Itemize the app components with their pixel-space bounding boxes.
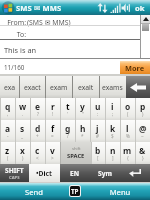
staticText: x [20, 145, 25, 156]
button[interactable]: e [30, 98, 45, 120]
button[interactable]: EN [60, 164, 89, 182]
staticText: ( [7, 155, 9, 161]
button[interactable]: a [0, 120, 15, 142]
staticText: c [35, 145, 40, 156]
button[interactable]: exa [0, 76, 19, 98]
staticText: shift [72, 146, 81, 152]
staticText: + [36, 133, 39, 139]
button[interactable]: shift [60, 142, 91, 164]
staticText: * [81, 133, 84, 139]
staticText: SPACE [67, 152, 85, 160]
button[interactable]: @ [135, 120, 150, 142]
staticText: e [35, 101, 41, 112]
button[interactable]: g [60, 120, 75, 142]
staticText: exalt [78, 83, 94, 92]
button[interactable]: f [45, 120, 60, 142]
button[interactable]: h [75, 120, 90, 142]
button[interactable]: exact [19, 76, 45, 98]
staticText: s [20, 123, 25, 134]
staticText: m [123, 145, 132, 156]
staticText: CAPS [9, 175, 20, 181]
button[interactable]: i [105, 98, 120, 120]
button[interactable]: d [30, 120, 45, 142]
button[interactable]: o [120, 98, 135, 120]
staticText: ( [127, 111, 129, 117]
staticText: $ [111, 133, 114, 139]
staticText: { [127, 155, 129, 161]
button[interactable] [86, 183, 150, 200]
button[interactable]: x [15, 142, 30, 164]
staticText: q [5, 101, 11, 112]
staticText: exams [102, 83, 123, 92]
button[interactable]: m [120, 142, 135, 164]
staticText: ! [52, 111, 54, 117]
staticText: r [51, 101, 55, 112]
button[interactable]: q [0, 98, 15, 120]
staticText: @ [139, 123, 147, 134]
staticText: (SMS ✉ MMS) [27, 18, 71, 27]
button[interactable]: s [15, 120, 30, 142]
staticText: > [51, 155, 54, 161]
button[interactable]: Scroll up [141, 15, 150, 23]
button[interactable]: n [105, 142, 120, 164]
staticText: exa [4, 83, 16, 92]
staticText: To: [0, 30, 26, 39]
button[interactable]: k [105, 120, 120, 142]
button[interactable]: exalt [72, 76, 99, 98]
staticText: 11/160 [4, 63, 25, 72]
button[interactable]: w [15, 98, 30, 120]
staticText: / [67, 133, 69, 139]
staticText: •Dict [36, 169, 53, 178]
button[interactable] [0, 183, 64, 200]
staticText: j [96, 123, 99, 134]
button[interactable]: z [0, 142, 15, 164]
button[interactable]: p [135, 98, 150, 120]
staticText: ) [22, 155, 24, 161]
button[interactable]: •Dict [29, 164, 60, 182]
button[interactable]: More [120, 61, 150, 74]
button[interactable]: & [135, 142, 150, 164]
button[interactable]: b [91, 142, 105, 164]
staticText: i [111, 101, 114, 112]
button[interactable]: exam [45, 76, 72, 98]
staticText: ~ [141, 133, 144, 139]
staticText: % [126, 133, 130, 139]
button[interactable]: c [30, 142, 45, 164]
button[interactable]: y [75, 98, 90, 120]
staticText: z [5, 145, 10, 156]
staticText: b [95, 145, 101, 156]
staticText: ; [112, 111, 114, 117]
staticText: ] [112, 155, 114, 161]
staticText: exact [24, 83, 41, 92]
button[interactable]: exams [99, 76, 126, 98]
staticText: ? [37, 111, 39, 117]
staticText: h [80, 123, 86, 134]
button[interactable]: Input panel [69, 185, 81, 197]
staticText: EN [70, 169, 80, 178]
button[interactable]: v [45, 142, 60, 164]
staticText: ' [67, 111, 69, 117]
staticText: t [66, 101, 70, 112]
staticText: p [140, 101, 146, 112]
button[interactable]: Enter [120, 164, 150, 182]
staticText: ) [142, 111, 144, 117]
staticText: w [19, 101, 27, 112]
button[interactable]: j [90, 120, 105, 142]
staticText: . [22, 111, 24, 117]
button[interactable]: u [90, 98, 105, 120]
staticText: u [95, 101, 101, 112]
staticText: # [96, 133, 99, 139]
staticText: This is an [4, 45, 37, 55]
staticText: Send [22, 187, 46, 197]
staticText: < [36, 155, 39, 161]
button[interactable]: Backspace [126, 76, 150, 98]
staticText: More [125, 63, 145, 73]
button[interactable]: r [45, 98, 60, 120]
staticText: v [50, 145, 55, 156]
button[interactable]: Sym [89, 164, 120, 182]
staticText: _ [21, 133, 24, 139]
button[interactable]: t [60, 98, 75, 120]
staticText: a [5, 123, 11, 134]
button[interactable]: l [120, 120, 135, 142]
button[interactable]: SHIFT [0, 164, 29, 182]
